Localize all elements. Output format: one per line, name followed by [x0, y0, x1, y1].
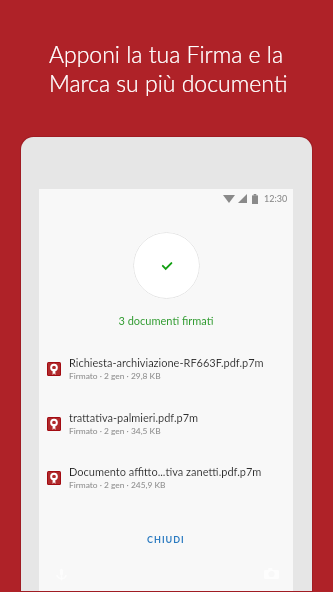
staticText: Richiesta-archiviazione-RF663F.pdf.p7m: [69, 356, 264, 369]
button[interactable]: CHIUDI: [135, 528, 197, 551]
staticText: Marca su più documenti: [49, 69, 288, 97]
staticText: trattativa-palmieri.pdf.p7m: [69, 411, 199, 424]
staticText: Firmato · 2 gen · 34,5 KB: [69, 426, 161, 436]
button[interactable]: Richiesta-archiviazione-RF663F.pdf.p7m: [39, 356, 293, 381]
staticText: Firmato · 2 gen · 245,9 KB: [69, 480, 166, 490]
button[interactable]: Documento affitto...tiva zanetti.pdf.p7m: [39, 465, 293, 490]
staticText: Documento affitto...tiva zanetti.pdf.p7m: [69, 465, 262, 478]
button[interactable]: trattativa-palmieri.pdf.p7m: [39, 411, 293, 436]
staticText: 3 documenti firmati: [39, 314, 293, 327]
staticText: CHIUDI: [147, 534, 185, 545]
staticText: 12:30: [264, 193, 288, 204]
staticText: Apponi la tua Firma e la: [49, 40, 284, 68]
staticText: Firmato · 2 gen · 29,8 KB: [69, 371, 161, 381]
